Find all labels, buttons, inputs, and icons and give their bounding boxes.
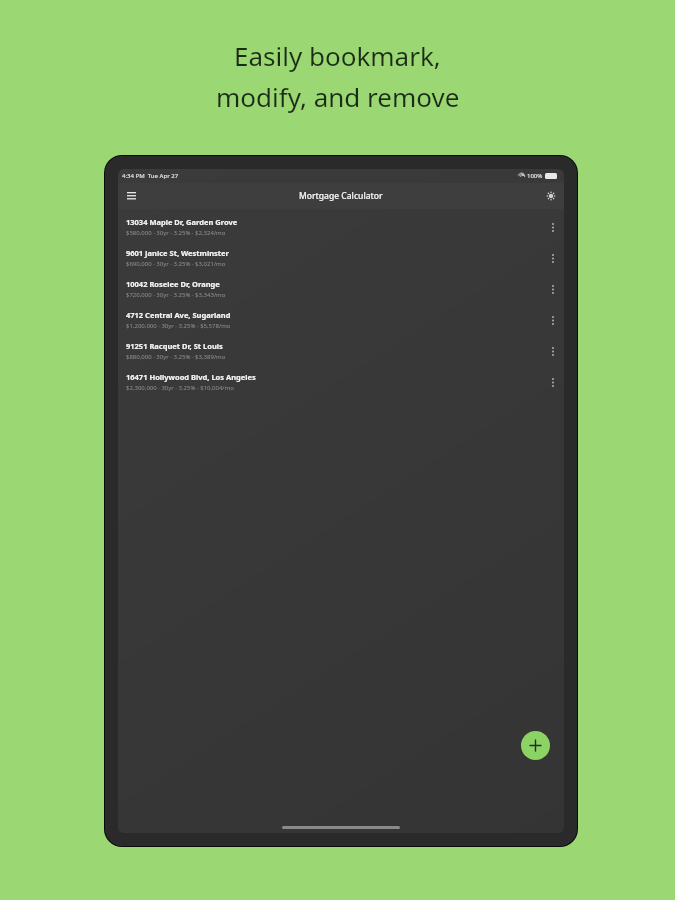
- staticText: $1,200,000 · 30yr · 3.25% · $5,578/mo: [126, 322, 231, 330]
- button[interactable]: More options: [544, 249, 562, 267]
- staticText: 16471 Hollywood Blvd, Los Angeles: [126, 372, 256, 382]
- staticText: 13034 Maple Dr, Garden Grove: [126, 217, 238, 227]
- button[interactable]: 16471 Hollywood Blvd, Los Angeles: [118, 366, 564, 397]
- staticText: modify, and remove: [216, 79, 460, 114]
- staticText: $580,000 · 30yr · 3.25% · $2,324/mo: [126, 229, 226, 237]
- staticText: $690,000 · 30yr · 3.25% · $3,021/mo: [126, 260, 226, 268]
- staticText: 91251 Racquet Dr, St Louis: [126, 341, 223, 351]
- staticText: 4712 Central Ave, Sugarland: [126, 310, 231, 320]
- staticText: 9601 Janice St, Westminster: [126, 248, 229, 258]
- staticText: Mortgage Calculator: [299, 190, 383, 202]
- button[interactable]: 9601 Janice St, Westminster: [118, 242, 564, 273]
- button[interactable]: More options: [544, 218, 562, 236]
- staticText: $720,000 · 30yr · 3.25% · $3,343/mo: [126, 291, 226, 299]
- staticText: 4:34 PM Tue Apr 27: [122, 172, 179, 180]
- button[interactable]: 10042 Roselee Dr, Orange: [118, 273, 564, 304]
- button[interactable]: 13034 Maple Dr, Garden Grove: [118, 211, 564, 242]
- button[interactable]: More options: [544, 280, 562, 298]
- staticText: Easily bookmark,: [234, 38, 441, 73]
- staticText: $2,300,000 · 30yr · 3.25% · $10,004/mo: [126, 384, 234, 392]
- button[interactable]: Settings: [542, 187, 560, 205]
- staticText: 100%: [527, 172, 543, 180]
- button[interactable]: Menu: [122, 187, 140, 205]
- button[interactable]: Add mortgage: [521, 731, 550, 760]
- button[interactable]: 4712 Central Ave, Sugarland: [118, 304, 564, 335]
- button[interactable]: More options: [544, 342, 562, 360]
- staticText: 10042 Roselee Dr, Orange: [126, 279, 220, 289]
- button[interactable]: More options: [544, 373, 562, 391]
- button[interactable]: More options: [544, 311, 562, 329]
- staticText: $880,000 · 30yr · 3.25% · $3,389/mo: [126, 353, 226, 361]
- button[interactable]: 91251 Racquet Dr, St Louis: [118, 335, 564, 366]
